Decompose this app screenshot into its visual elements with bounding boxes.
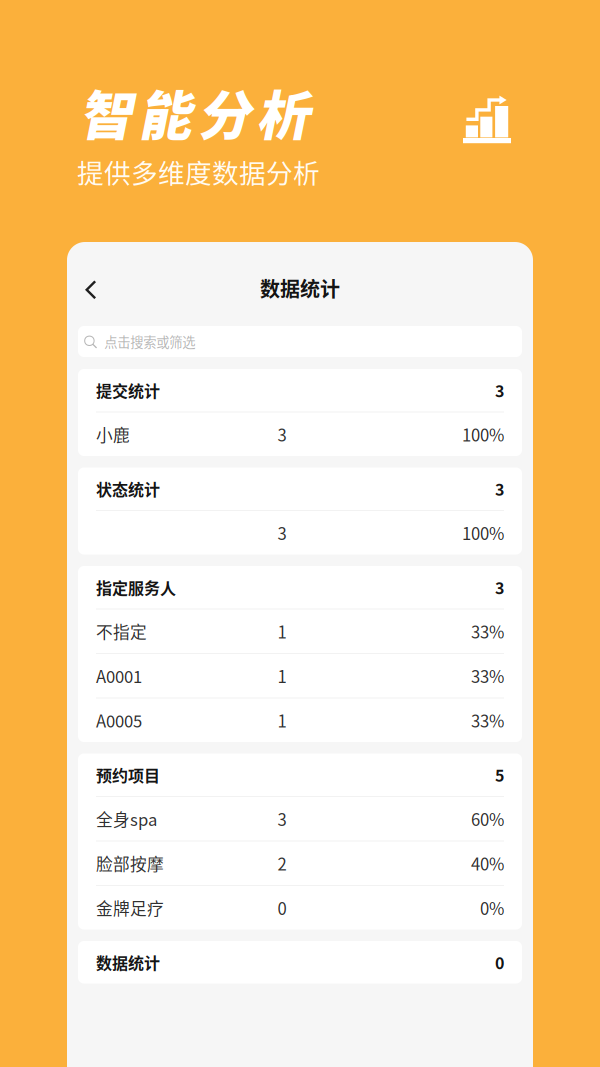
staticText: 40% xyxy=(471,851,504,875)
staticText: 0% xyxy=(480,896,504,920)
staticText: 1 xyxy=(277,708,286,732)
staticText: 脸部按摩 xyxy=(96,851,164,875)
staticText: A0005 xyxy=(96,708,142,732)
staticText: 金牌足疗 xyxy=(96,896,164,920)
button[interactable]: 不指定 xyxy=(78,609,522,653)
button[interactable]: 数据统计 xyxy=(78,941,522,983)
staticText: 小鹿 xyxy=(96,422,130,446)
staticText: 提供多维度数据分析 xyxy=(77,152,320,191)
staticText: 33% xyxy=(471,664,504,688)
button[interactable]: 提交统计 xyxy=(78,369,522,411)
staticText: 3 xyxy=(277,521,286,545)
staticText: 状态统计 xyxy=(96,477,160,500)
staticText: 数据统计 xyxy=(96,951,160,974)
staticText: 指定服务人 xyxy=(96,576,176,599)
staticText: 0 xyxy=(277,896,286,920)
staticText: 33% xyxy=(471,708,504,732)
staticText: 3 xyxy=(277,422,286,446)
button[interactable]: 脸部按摩 xyxy=(78,841,522,885)
staticText: 全身spa xyxy=(96,807,157,831)
staticText: 点击搜索或筛选 xyxy=(104,332,195,351)
button[interactable]: 指定服务人 xyxy=(78,566,522,608)
staticText: 0 xyxy=(495,951,504,974)
button[interactable]: 全身spa xyxy=(78,797,522,840)
button[interactable]: 小鹿 xyxy=(78,412,522,456)
staticText: 提交统计 xyxy=(96,379,160,402)
button[interactable]: A0001 xyxy=(78,654,522,697)
staticText: 33% xyxy=(471,619,504,643)
staticText: 100% xyxy=(462,422,504,446)
staticText: 3 xyxy=(495,379,504,402)
button[interactable] xyxy=(78,511,522,554)
staticText: 不指定 xyxy=(96,619,147,643)
button[interactable]: 金牌足疗 xyxy=(78,886,522,929)
staticText: 1 xyxy=(277,619,286,643)
staticText: 100% xyxy=(462,521,504,545)
button[interactable]: A0005 xyxy=(78,698,522,742)
staticText: 数据统计 xyxy=(260,273,340,302)
staticText: 1 xyxy=(277,664,286,688)
staticText: 60% xyxy=(471,807,504,831)
staticText: A0001 xyxy=(96,664,142,688)
button[interactable]: 预约项目 xyxy=(78,753,522,796)
staticText: 3 xyxy=(495,477,504,500)
staticText: 3 xyxy=(495,576,504,599)
staticText: 预约项目 xyxy=(96,763,160,786)
staticText: 2 xyxy=(277,851,286,875)
button[interactable]: Back xyxy=(75,266,106,309)
staticText: 5 xyxy=(495,763,504,786)
button[interactable]: 状态统计 xyxy=(78,467,522,510)
staticText: 3 xyxy=(277,807,286,831)
staticText: 智能分析 xyxy=(79,73,309,151)
button[interactable]: 点击搜索或筛选 xyxy=(78,326,522,357)
